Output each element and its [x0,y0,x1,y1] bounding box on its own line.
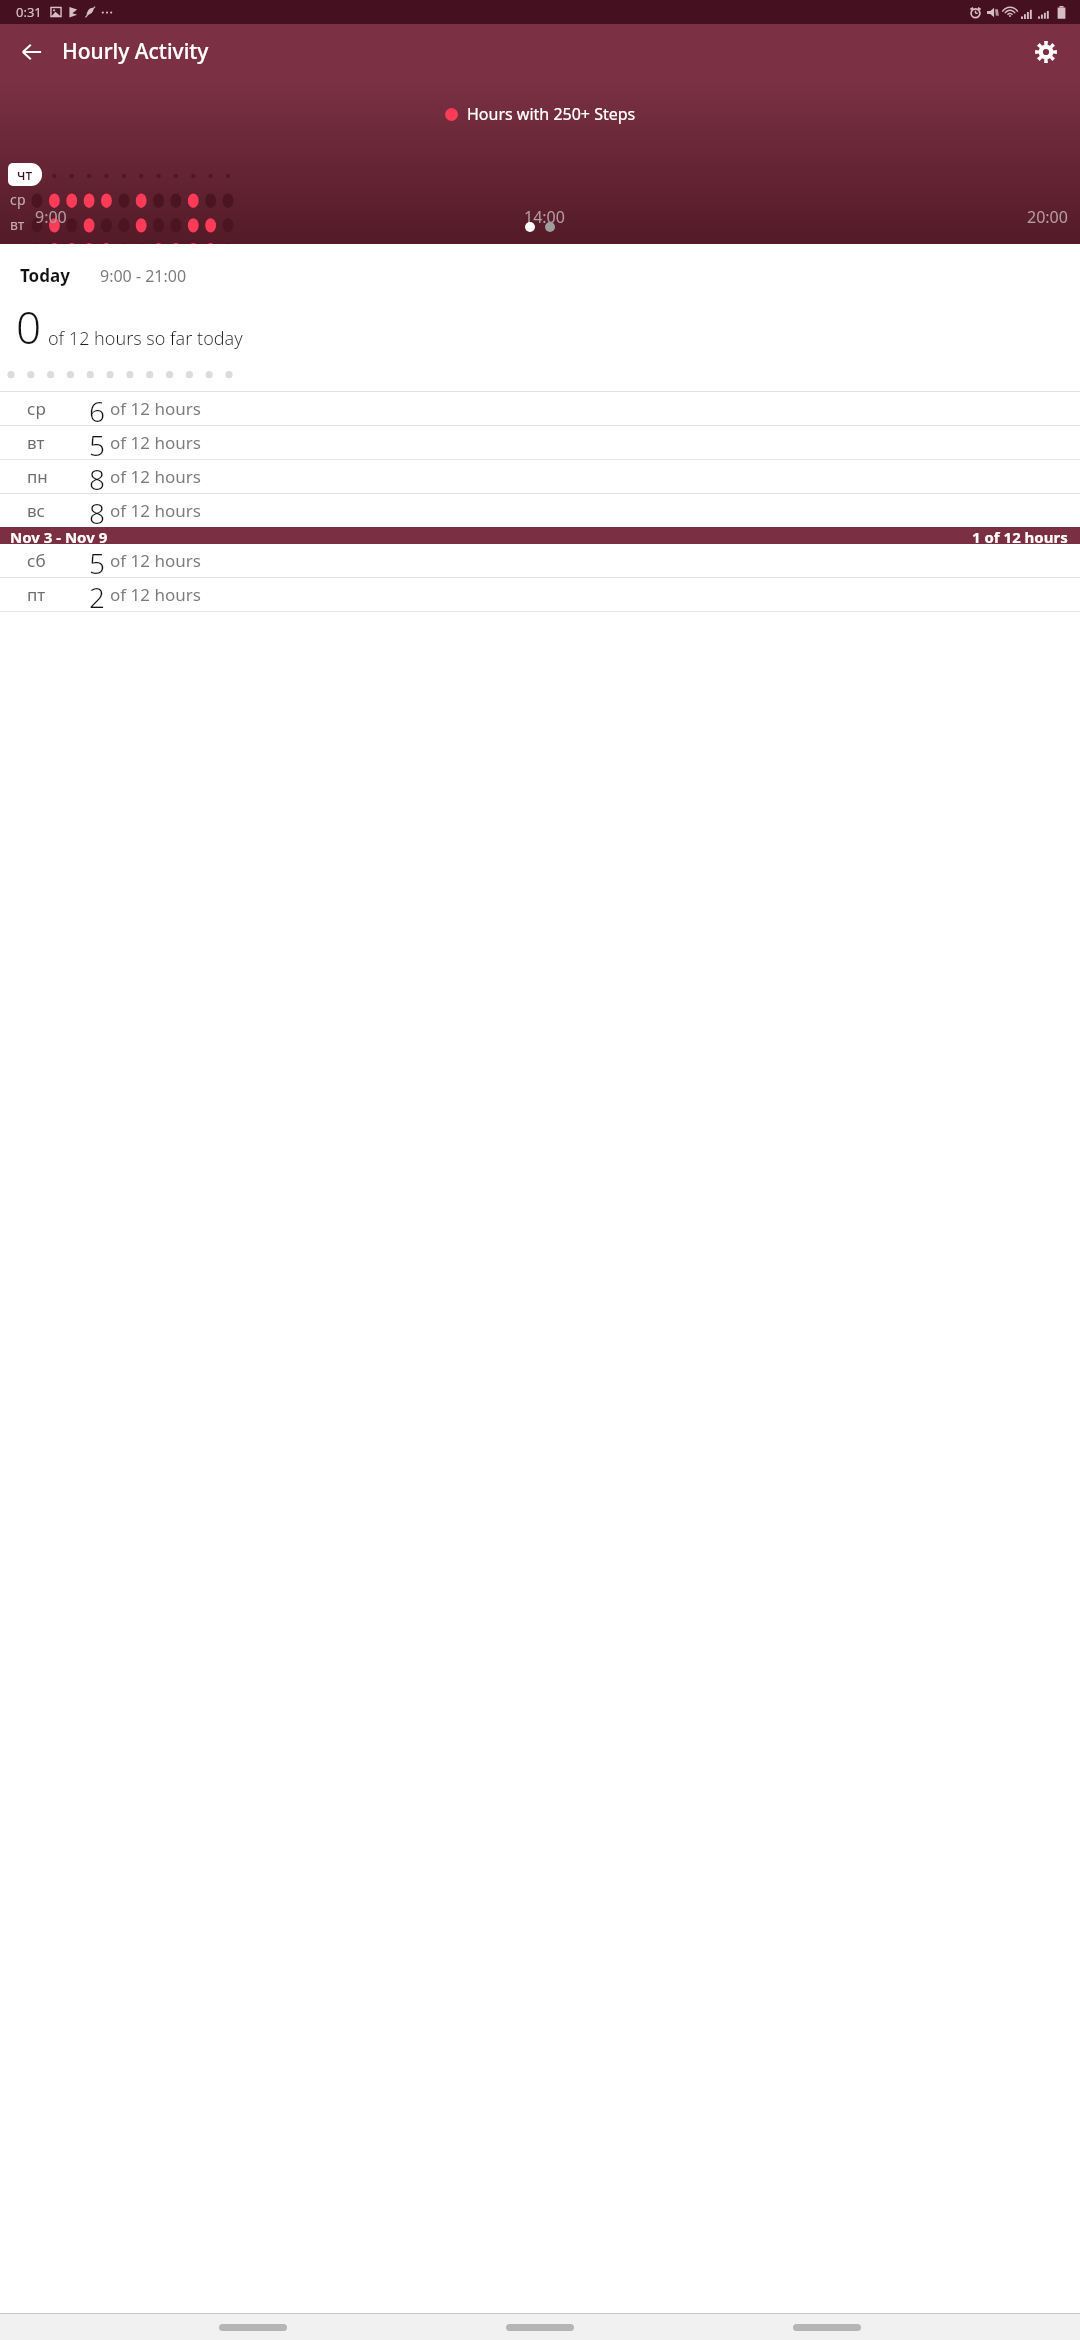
staticText: of 12 hours [110,397,201,420]
staticText: 1 of 12 hours [972,527,1068,544]
staticText: 9:00 [35,206,67,228]
staticText: Hours with 250+ Steps [467,103,636,125]
staticText: вт [10,215,50,234]
button[interactable]: пн [0,460,1080,493]
button[interactable]: Back [8,28,56,76]
staticText: ср [10,190,50,209]
staticText: 14:00 [524,206,565,228]
button[interactable]: пт [0,578,1080,611]
staticText: 9:00 - 21:00 [100,265,187,287]
staticText: Today [20,264,70,287]
staticText: 5 [89,544,105,577]
staticText: of 12 hours [110,431,201,454]
button[interactable]: сб [0,544,1080,577]
button[interactable]: Navigation [793,2318,861,2336]
staticText: чт [17,165,33,184]
staticText: вс [27,499,89,522]
staticText: Nov 3 - Nov 9 [10,527,108,544]
staticText: of 12 hours [110,465,201,488]
staticText: 0:31 [16,3,42,21]
staticText: 6 [89,392,105,425]
staticText: of 12 hours [110,549,201,572]
button[interactable]: Today [0,244,1080,391]
staticText: 20:00 [1027,206,1068,228]
button[interactable]: вс [0,494,1080,527]
staticText: of 12 hours [110,499,201,522]
staticText: 8 [89,494,105,527]
staticText: 5 [89,426,105,459]
staticText: 2 [89,578,105,611]
staticText: вт [27,431,89,454]
staticText: сб [27,549,89,572]
staticText: Hourly Activity [62,37,209,66]
button[interactable]: ср [0,392,1080,425]
staticText: пт [27,583,89,606]
staticText: of 12 hours so far today [48,326,243,351]
staticText: пн [27,465,89,488]
button[interactable]: Nov 3 - Nov 9 [0,527,1080,544]
button[interactable]: Settings [1022,28,1070,76]
staticText: 0 [16,297,42,357]
button[interactable]: Navigation [506,2318,574,2336]
button[interactable]: Navigation [219,2318,287,2336]
staticText: ср [27,397,89,420]
staticText: 8 [89,460,105,493]
staticText: of 12 hours [110,583,201,606]
button[interactable]: вт [0,426,1080,459]
